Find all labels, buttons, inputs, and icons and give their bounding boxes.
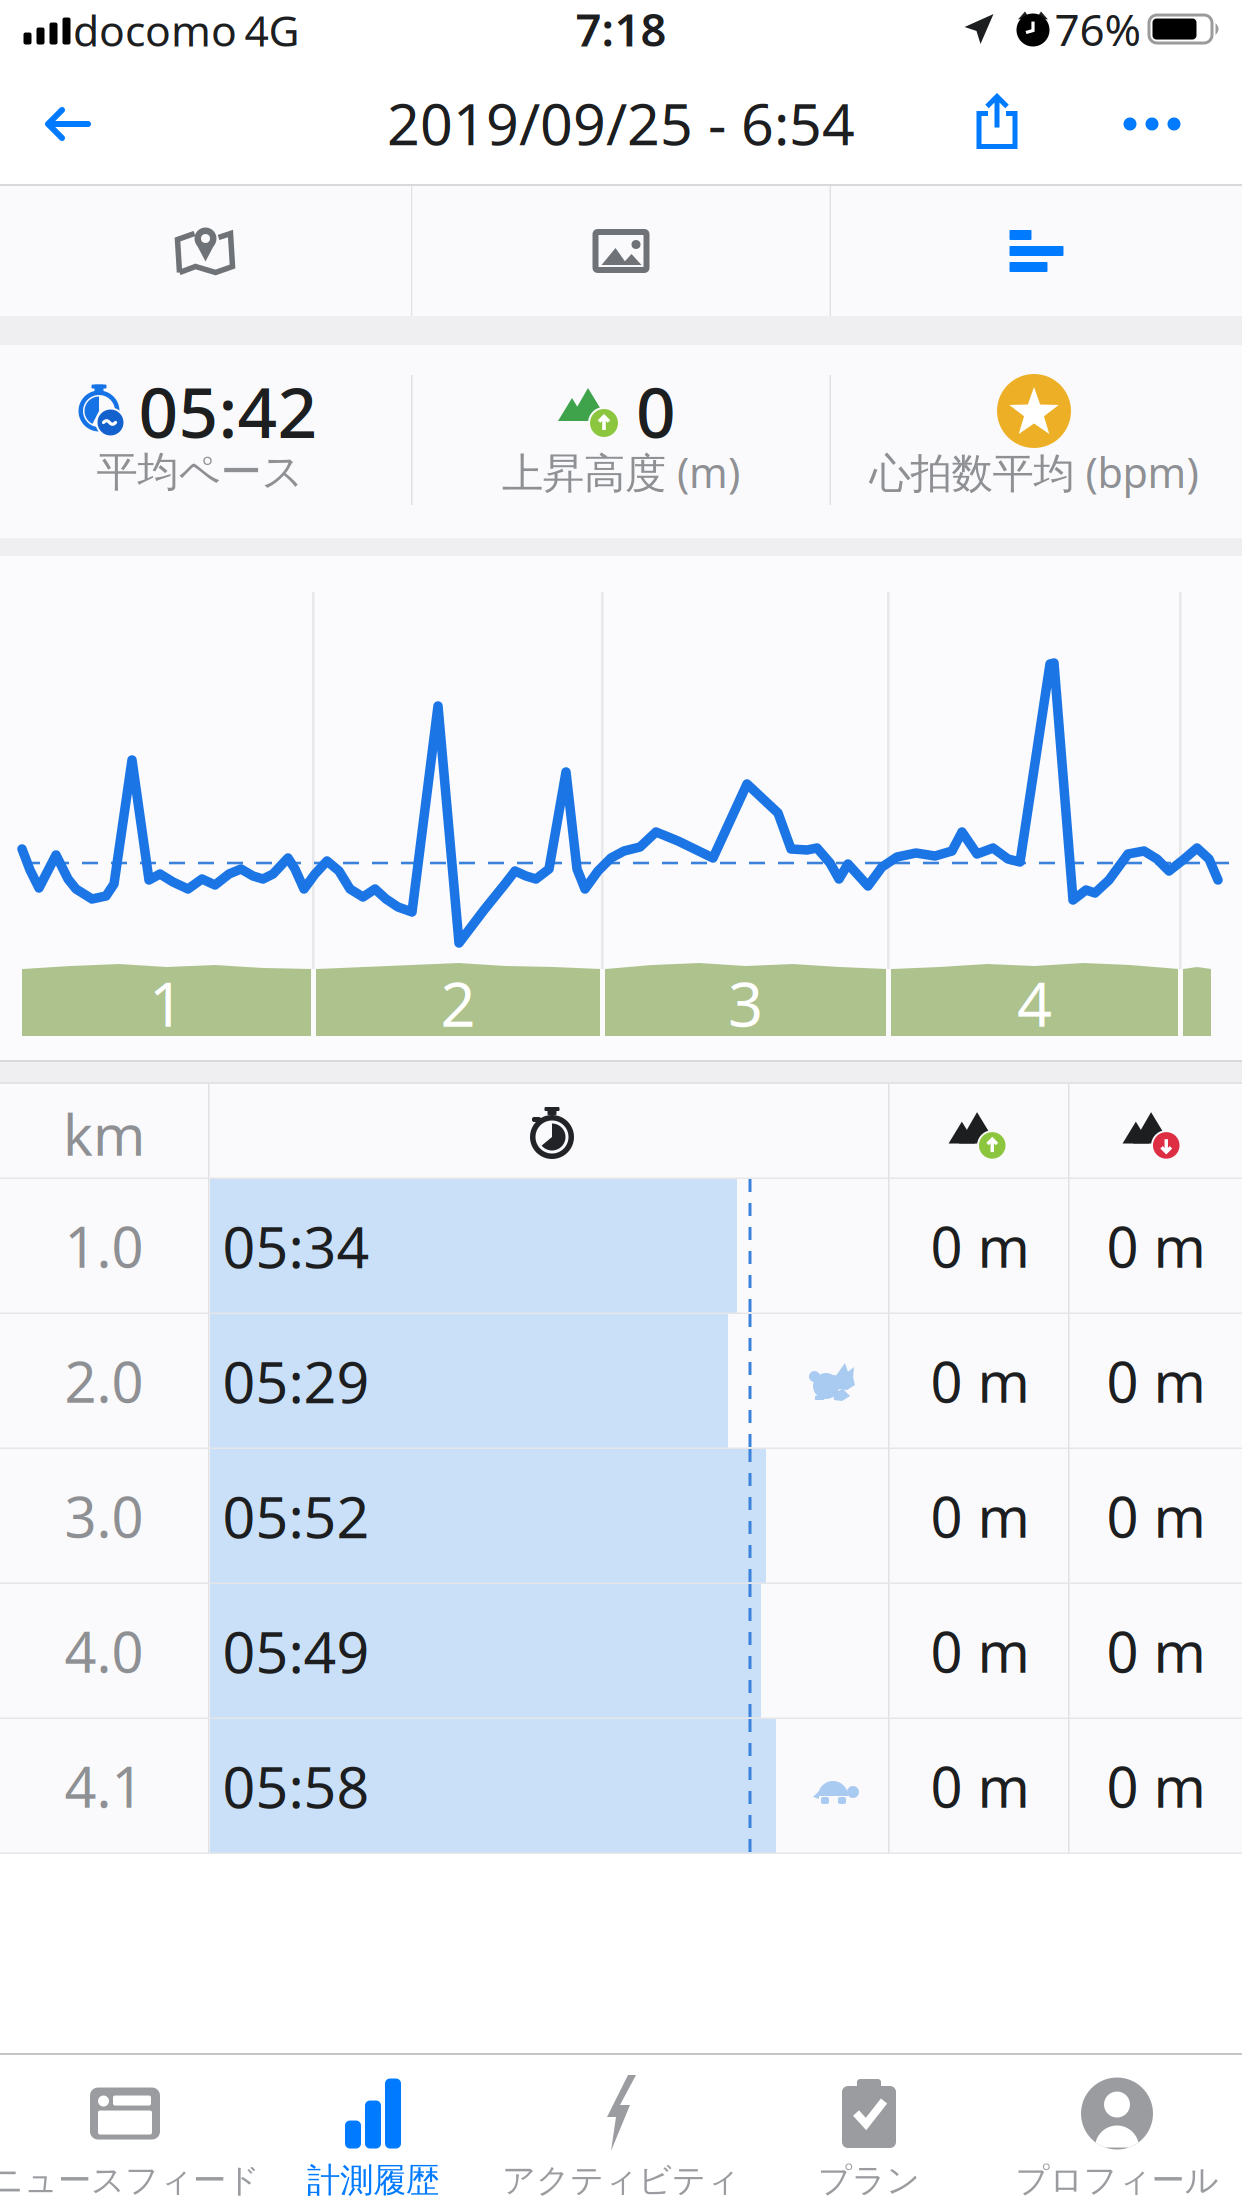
staticText: 0 m	[930, 1614, 1029, 1688]
button[interactable]: プラン	[745, 2055, 993, 2205]
staticText: 0 m	[930, 1209, 1029, 1283]
staticText: 2	[440, 962, 475, 1044]
button[interactable]: プロフィール	[993, 2055, 1241, 2205]
button[interactable]: アクティビティ	[497, 2055, 745, 2205]
button[interactable]: Back	[28, 89, 108, 159]
staticText: 3.0	[64, 1479, 143, 1553]
staticText: 7:18	[575, 0, 666, 59]
staticText: 0 m	[930, 1749, 1029, 1823]
staticText: 0 m	[1106, 1479, 1205, 1553]
staticText: 3	[728, 962, 763, 1044]
staticText: 05:29	[222, 1343, 369, 1419]
staticText: 0	[636, 365, 676, 457]
button[interactable]: Statistics	[831, 186, 1242, 316]
staticText: 0 m	[1106, 1209, 1205, 1283]
staticText: ニュースフィード	[0, 2160, 260, 2201]
staticText: 上昇高度 (m)	[502, 445, 740, 499]
staticText: 0 m	[930, 1344, 1029, 1418]
staticText: 1	[149, 962, 184, 1044]
staticText: 4.0	[64, 1614, 143, 1688]
staticText: 4.1	[64, 1749, 143, 1823]
button[interactable]: Map	[0, 186, 411, 316]
staticText: 心拍数平均 (bpm)	[869, 445, 1198, 499]
staticText: docomo	[73, 2, 237, 58]
staticText: 平均ペース	[96, 447, 303, 497]
button[interactable]: ニュースフィード	[1, 2055, 249, 2205]
staticText: 1.0	[64, 1209, 143, 1283]
button[interactable]: More	[1117, 89, 1187, 159]
staticText: 2019/09/25 - 6:54	[387, 85, 855, 161]
staticText: 76%	[1054, 0, 1141, 58]
staticText: 05:42	[138, 365, 317, 457]
button[interactable]: Photos	[412, 186, 829, 316]
staticText: 0 m	[1106, 1614, 1205, 1688]
staticText: プラン	[818, 2160, 920, 2201]
staticText: 4G	[244, 2, 299, 58]
staticText: 計測履歴	[307, 2160, 439, 2201]
staticText: プロフィール	[1015, 2160, 1218, 2201]
staticText: 4	[1017, 962, 1052, 1044]
staticText: 05:58	[222, 1748, 369, 1824]
staticText: 0 m	[930, 1479, 1029, 1553]
staticText: 05:52	[222, 1478, 369, 1554]
staticText: 05:49	[222, 1613, 369, 1689]
staticText: 05:34	[222, 1208, 369, 1284]
button[interactable]: 計測履歴	[249, 2055, 497, 2205]
staticText: 0 m	[1106, 1344, 1205, 1418]
staticText: km	[63, 1097, 145, 1171]
button[interactable]: Share	[962, 87, 1032, 157]
staticText: アクティビティ	[502, 2160, 740, 2201]
staticText: 0 m	[1106, 1749, 1205, 1823]
staticText: 2.0	[64, 1344, 143, 1418]
